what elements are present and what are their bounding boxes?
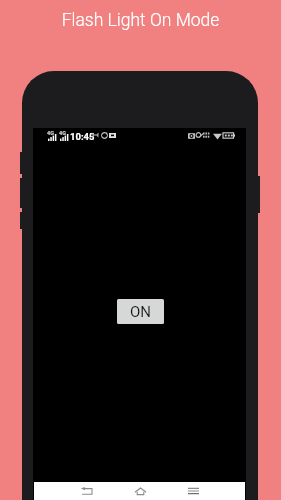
button[interactable]: Back: [68, 482, 104, 500]
staticText: 10:45: [70, 131, 95, 142]
button[interactable]: ON: [117, 299, 164, 324]
staticText: ON: [130, 303, 152, 321]
button[interactable]: Recent apps: [175, 482, 211, 500]
staticText: Flash Light On Mode: [0, 10, 281, 31]
staticText: 4G: [47, 130, 54, 136]
staticText: 4G: [59, 130, 66, 136]
button[interactable]: Home: [122, 482, 158, 500]
